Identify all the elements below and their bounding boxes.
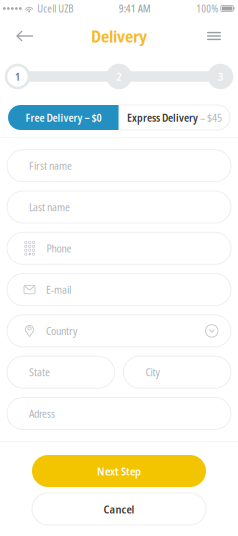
staticText: Ucell UZB — [37, 2, 73, 15]
staticText: E-mail — [46, 282, 71, 297]
staticText: 100% — [196, 2, 218, 15]
staticText: Cancel — [103, 501, 134, 517]
staticText: Last name — [29, 200, 70, 214]
button[interactable]: Country — [7, 315, 231, 347]
button[interactable]: Free Delivery – $0 — [8, 105, 119, 130]
staticText: First name — [29, 158, 72, 173]
staticText: – $45 — [200, 110, 222, 125]
staticText: Adress — [29, 406, 55, 421]
button[interactable]: E-mail — [7, 274, 231, 306]
button[interactable]: Last name — [7, 191, 231, 223]
button[interactable]: Back — [0, 19, 46, 53]
button[interactable]: State — [7, 356, 114, 388]
staticText: Delivery — [91, 25, 147, 47]
staticText: State — [29, 365, 50, 379]
button[interactable]: Express Delivery — [119, 105, 230, 130]
staticText: 2 — [116, 69, 121, 84]
staticText: Next Step — [97, 463, 141, 479]
staticText: 1 — [15, 69, 20, 84]
staticText: Phone — [46, 241, 71, 255]
button[interactable]: Menu — [195, 19, 238, 53]
staticText: 3 — [218, 69, 223, 84]
staticText: 9:41 AM — [119, 2, 151, 15]
button[interactable]: First name — [7, 150, 231, 182]
button[interactable]: Phone — [7, 232, 231, 264]
button[interactable]: Cancel — [32, 493, 206, 525]
button[interactable]: Adress — [7, 397, 231, 429]
staticText: Country — [46, 324, 77, 338]
staticText: Express Delivery — [127, 110, 200, 125]
staticText: Free Delivery – $0 — [25, 110, 101, 125]
button[interactable]: Next Step — [32, 455, 206, 487]
staticText: City — [145, 365, 159, 379]
button[interactable]: City — [123, 356, 231, 388]
